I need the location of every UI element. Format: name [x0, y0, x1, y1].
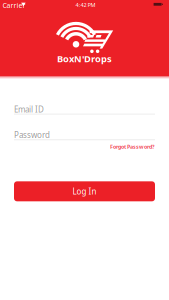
- staticText: Password: [14, 130, 50, 140]
- button[interactable]: Log In: [14, 181, 155, 201]
- staticText: Carrier: [3, 1, 26, 10]
- staticText: Forgot Password?: [110, 143, 155, 150]
- staticText: 4:42 PM: [75, 1, 95, 9]
- staticText: Log In: [72, 186, 96, 197]
- button[interactable]: Forgot Password?: [110, 143, 155, 150]
- staticText: BoxN'Drops: [57, 52, 112, 65]
- staticText: Email ID: [14, 104, 44, 115]
